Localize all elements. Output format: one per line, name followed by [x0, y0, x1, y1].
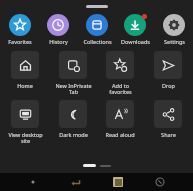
button[interactable]: Drop — [146, 51, 190, 89]
button[interactable]: History — [39, 14, 77, 45]
button[interactable]: Home — [66, 173, 84, 191]
button[interactable]: Back — [24, 173, 42, 191]
staticText: Read aloud — [105, 131, 135, 138]
staticText: Favorites — [8, 38, 32, 45]
staticText: History — [49, 38, 68, 45]
button[interactable]: Favorites — [1, 14, 39, 45]
button[interactable]: New InPrivate Tab — [51, 51, 95, 96]
button[interactable]: Home — [3, 51, 47, 89]
staticText: Home — [17, 82, 33, 89]
button[interactable]: Recents — [109, 173, 127, 191]
button[interactable]: Assistant — [151, 173, 169, 191]
button[interactable]: Dark mode — [51, 100, 95, 138]
staticText: View desktop site — [8, 131, 43, 145]
button[interactable]: Collections — [78, 14, 116, 45]
staticText: Share — [161, 131, 176, 138]
button[interactable]: Settings — [155, 14, 193, 45]
staticText: New InPrivate Tab — [55, 82, 92, 96]
button[interactable]: View desktop site — [3, 100, 47, 145]
staticText: Collections — [83, 38, 112, 45]
button[interactable]: Read aloud — [98, 100, 142, 138]
button[interactable]: Add to favorites — [98, 51, 142, 96]
staticText: Settings — [164, 38, 185, 45]
staticText: Drop — [162, 82, 175, 89]
button[interactable]: Share — [146, 100, 190, 138]
staticText: Dark mode — [59, 131, 88, 138]
staticText: Downloads — [121, 38, 150, 45]
staticText: Add to favorites — [109, 82, 132, 96]
button[interactable]: Downloads — [116, 14, 154, 45]
